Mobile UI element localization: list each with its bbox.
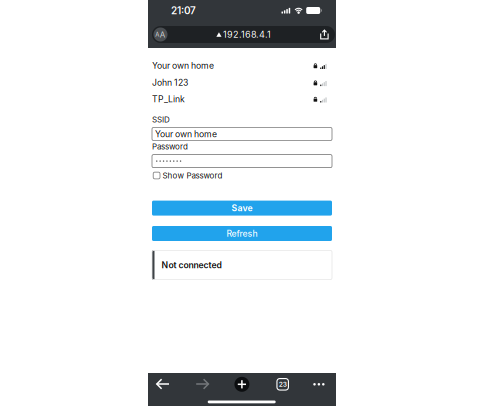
staticText: A (155, 31, 159, 38)
staticText: 21:07 (171, 4, 196, 17)
staticText: 23 (279, 380, 287, 388)
button[interactable]: Forward (195, 378, 209, 390)
button[interactable]: New Tab (234, 377, 249, 392)
staticText: Refresh (226, 228, 257, 239)
button[interactable]: Back (156, 378, 170, 390)
staticText: Your own home (155, 129, 217, 139)
button[interactable]: Page settings (153, 27, 167, 41)
staticText: A (160, 30, 166, 39)
button[interactable]: Refresh (152, 226, 332, 241)
button[interactable]: Share (320, 29, 329, 40)
staticText: Your own home (152, 60, 214, 71)
button[interactable]: Tabs (277, 378, 289, 390)
staticText: Password (152, 142, 188, 151)
staticText: TP_Link (152, 94, 185, 104)
button[interactable]: Show Password (153, 171, 333, 179)
staticText: John 123 (152, 77, 188, 88)
staticText: Save (231, 203, 252, 213)
staticText: Not connected (161, 260, 221, 270)
staticText: 192.168.4.1 (223, 29, 271, 40)
button[interactable]: More (313, 378, 325, 390)
staticText: Show Password (162, 171, 222, 180)
button[interactable]: Save (152, 201, 332, 216)
staticText: SSID (152, 115, 170, 124)
